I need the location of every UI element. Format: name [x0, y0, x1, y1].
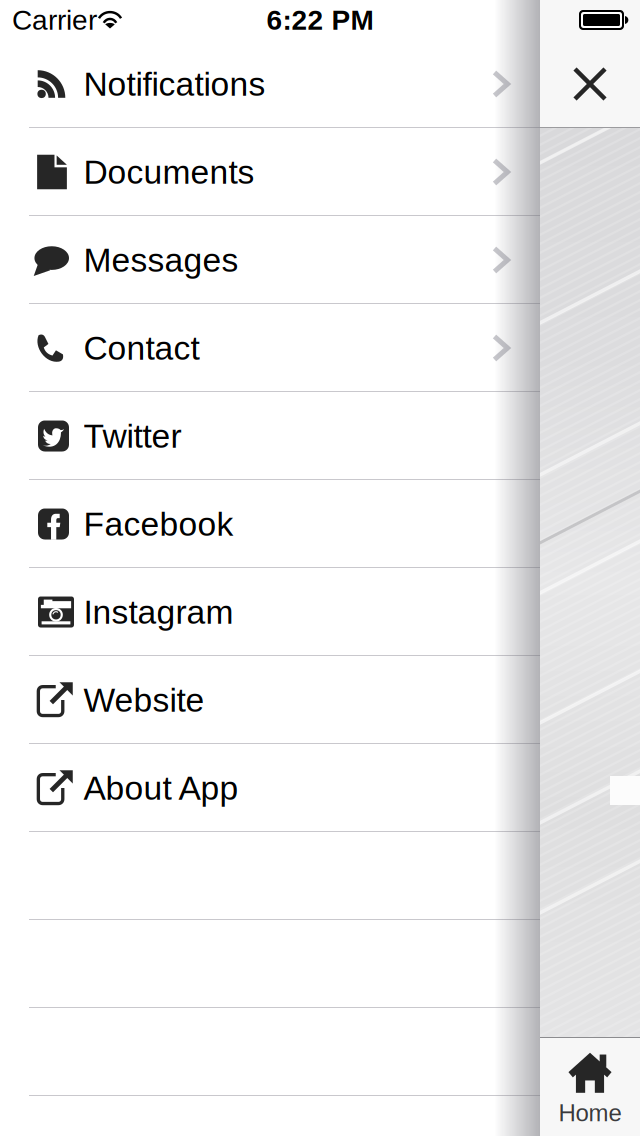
staticText: Instagram — [83, 593, 233, 631]
staticText: About App — [83, 769, 238, 807]
button[interactable]: Home — [540, 1037, 640, 1136]
staticText: Facebook — [83, 505, 233, 543]
staticText: Contact — [83, 329, 199, 367]
button[interactable]: Messages — [0, 216, 540, 304]
button[interactable]: Notifications — [0, 40, 540, 128]
button[interactable]: Close menu — [540, 0, 640, 88]
staticText: Home — [558, 1100, 621, 1126]
staticText: Carrier — [12, 4, 97, 36]
button[interactable]: Facebook — [0, 480, 540, 568]
staticText: Messages — [83, 241, 238, 279]
button[interactable]: Instagram — [0, 568, 540, 656]
staticText: 6:22 PM — [266, 4, 373, 36]
button[interactable]: Documents — [0, 128, 540, 216]
button[interactable]: Website — [0, 656, 540, 744]
staticText: Notifications — [83, 65, 265, 103]
staticText: Twitter — [83, 417, 181, 455]
staticText: Website — [83, 681, 204, 719]
button[interactable]: Contact — [0, 304, 540, 392]
staticText: Documents — [83, 153, 254, 191]
button[interactable]: About App — [0, 744, 540, 832]
button[interactable]: Twitter — [0, 392, 540, 480]
